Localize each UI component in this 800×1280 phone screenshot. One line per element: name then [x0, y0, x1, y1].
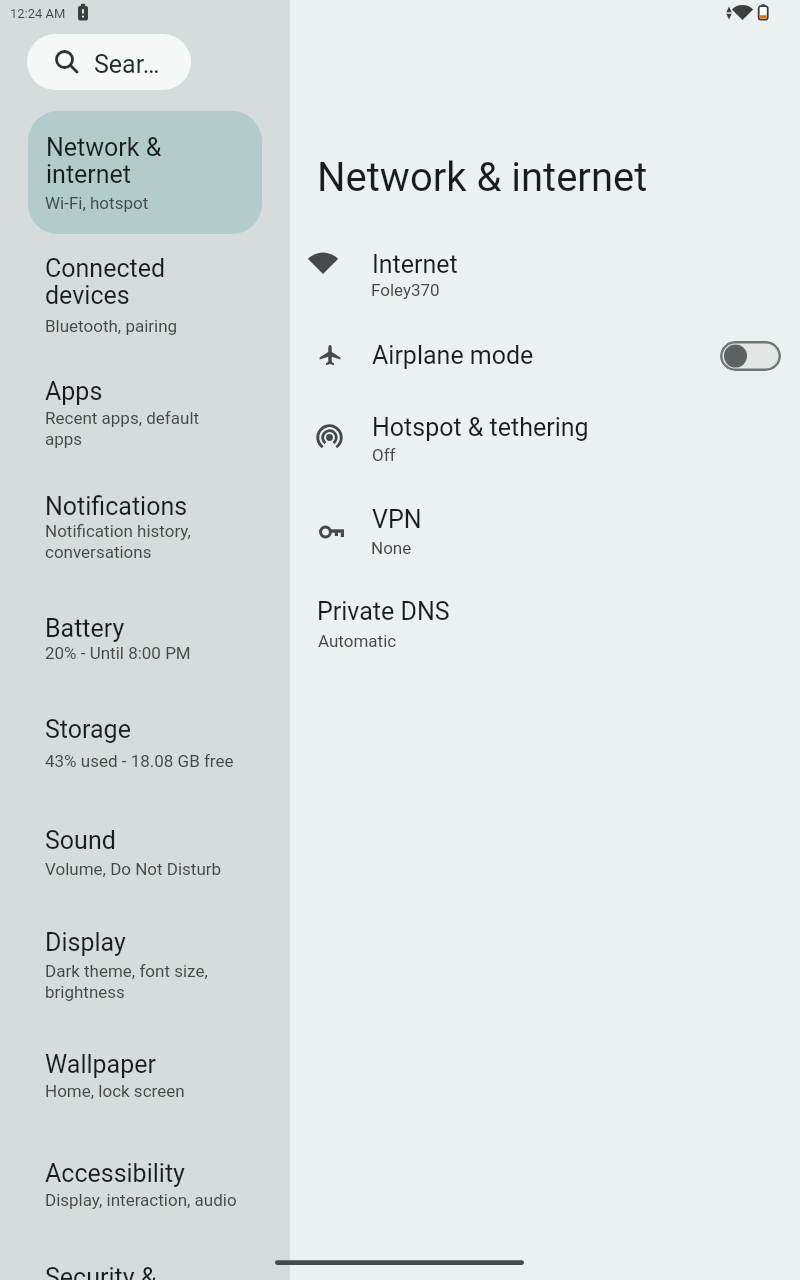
staticText: Display, interaction, audio: [45, 1190, 237, 1210]
staticText: Accessibility: [45, 1159, 185, 1188]
staticText: Recent apps, default: [45, 408, 200, 428]
staticText: Sear…: [94, 50, 160, 79]
staticText: Dark theme, font size,: [45, 961, 208, 981]
button[interactable]: Internet: [300, 230, 792, 310]
button[interactable]: Storage: [0, 699, 290, 786]
staticText: None: [371, 538, 412, 558]
button[interactable]: Network &: [28, 111, 262, 234]
staticText: Wi-Fi, hotspot: [45, 193, 149, 213]
staticText: Volume, Do Not Disturb: [45, 859, 222, 879]
staticText: Security &: [45, 1263, 157, 1280]
button[interactable]: Display: [0, 912, 290, 1017]
staticText: Connected: [45, 254, 166, 283]
staticText: Bluetooth, pairing: [45, 316, 178, 336]
button[interactable]: Sound: [0, 810, 290, 894]
staticText: Hotspot & tethering: [372, 413, 589, 442]
staticText: Network & internet: [317, 154, 648, 201]
staticText: Wallpaper: [45, 1050, 156, 1079]
button[interactable]: VPN: [300, 496, 792, 570]
staticText: Sound: [45, 826, 116, 855]
staticText: Notification history,: [45, 521, 191, 541]
staticText: Internet: [372, 250, 458, 279]
staticText: Private DNS: [317, 597, 450, 626]
staticText: VPN: [372, 505, 422, 534]
staticText: Home, lock screen: [45, 1081, 185, 1101]
staticText: apps: [45, 429, 83, 449]
staticText: Display: [45, 928, 126, 957]
staticText: Off: [372, 445, 396, 465]
button[interactable]: [27, 34, 191, 90]
button[interactable]: Wallpaper: [0, 1034, 290, 1116]
staticText: Foley370: [371, 280, 440, 300]
staticText: Automatic: [318, 631, 397, 651]
staticText: 43% used - 18.08 GB free: [45, 751, 234, 771]
staticText: devices: [45, 281, 130, 310]
button[interactable]: Notifications: [0, 476, 290, 577]
staticText: internet: [46, 160, 132, 189]
staticText: Notifications: [45, 492, 188, 521]
button[interactable]: Connected: [0, 238, 290, 351]
staticText: conversations: [45, 542, 152, 562]
staticText: brightness: [45, 982, 125, 1002]
button[interactable]: Hotspot & tethering: [300, 404, 792, 478]
button[interactable]: Apps: [0, 361, 290, 464]
staticText: Storage: [45, 715, 131, 744]
button[interactable]: Battery: [0, 598, 290, 678]
staticText: Network &: [46, 133, 162, 162]
button[interactable]: [720, 341, 781, 371]
staticText: Airplane mode: [372, 341, 534, 370]
button[interactable]: Private DNS: [300, 588, 792, 662]
button[interactable]: Accessibility: [0, 1143, 290, 1225]
staticText: Battery: [45, 614, 125, 643]
staticText: 20% - Until 8:00 PM: [45, 643, 191, 663]
button[interactable]: Security &: [0, 1247, 290, 1280]
button[interactable]: Airplane mode: [300, 326, 792, 386]
staticText: Apps: [45, 377, 103, 406]
staticText: 12:24 AM: [10, 6, 66, 21]
